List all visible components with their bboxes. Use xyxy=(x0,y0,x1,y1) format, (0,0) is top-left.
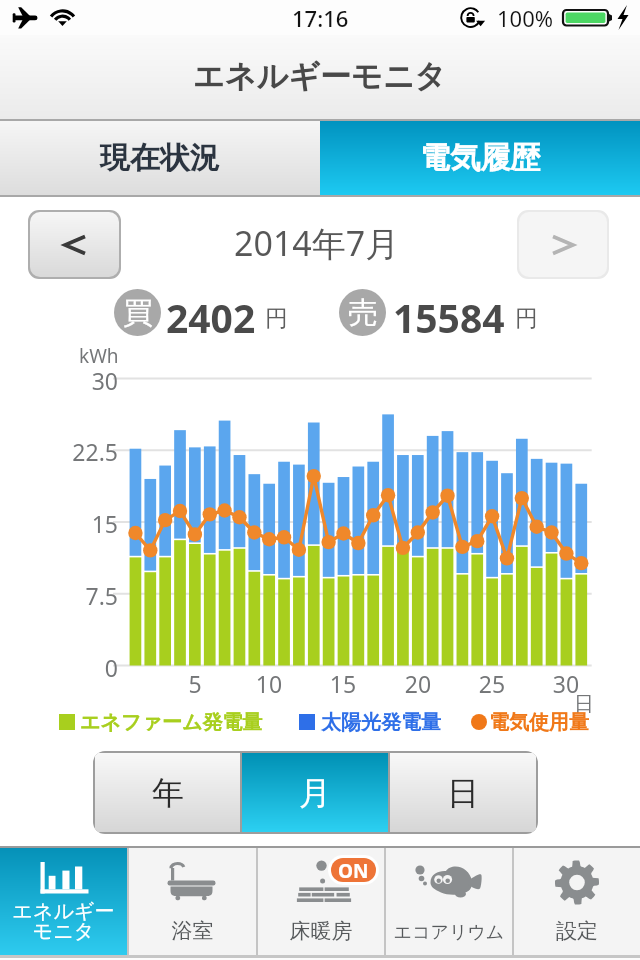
staticText: 日 xyxy=(447,773,479,813)
button[interactable]: 設定 xyxy=(514,848,640,955)
staticText: 浴室 xyxy=(129,918,256,944)
button[interactable]: 床暖房 xyxy=(258,848,384,955)
staticText: 10 xyxy=(249,668,289,699)
button[interactable]: 日 xyxy=(390,753,536,832)
button[interactable]: 年 xyxy=(95,753,240,832)
button[interactable]: 浴室 xyxy=(129,848,256,955)
staticText: 5 xyxy=(175,668,215,699)
button[interactable]: エコアリウム xyxy=(386,848,512,955)
button[interactable]: Previous month xyxy=(30,212,119,277)
staticText: 太陽光発電量 xyxy=(321,710,441,735)
staticText: 17:16 xyxy=(292,3,349,33)
staticText: 床暖房 xyxy=(258,918,384,944)
staticText: 年 xyxy=(152,773,184,813)
staticText: 20 xyxy=(398,668,438,699)
staticText: 100% xyxy=(497,3,554,33)
staticText: 月 xyxy=(299,773,331,813)
staticText: 電気使用量 xyxy=(489,710,589,735)
button[interactable]: エネルギー モニタ xyxy=(0,848,127,955)
staticText: エコアリウム xyxy=(386,921,512,944)
button[interactable]: Next month xyxy=(519,212,607,277)
staticText: 15584 xyxy=(393,291,505,344)
staticText: 15 xyxy=(323,668,363,699)
staticText: 25 xyxy=(472,668,512,699)
staticText: エネファーム発電量 xyxy=(80,710,263,735)
staticText: kWh xyxy=(79,343,119,369)
staticText: 買 xyxy=(123,294,153,332)
staticText: ON xyxy=(338,858,369,882)
staticText: エネルギーモニタ xyxy=(193,57,447,96)
staticText: 円 xyxy=(265,304,288,333)
staticText: 現在状況 xyxy=(100,139,220,177)
staticText: 0 xyxy=(48,652,118,683)
button[interactable]: 月 xyxy=(242,753,388,832)
staticText: 売 xyxy=(348,294,378,332)
staticText: 7.5 xyxy=(48,580,118,611)
staticText: 2402 xyxy=(166,291,256,344)
staticText: 円 xyxy=(515,304,538,333)
staticText: 22.5 xyxy=(48,436,118,467)
staticText: 日 xyxy=(574,692,594,717)
staticText: 電気履歴 xyxy=(420,139,540,177)
staticText: 15 xyxy=(48,508,118,539)
button[interactable]: 電気履歴 xyxy=(320,119,640,197)
staticText: 30 xyxy=(546,668,586,699)
staticText: エネルギー モニタ xyxy=(0,899,127,944)
staticText: 設定 xyxy=(514,918,640,944)
button[interactable]: 現在状況 xyxy=(0,119,320,197)
staticText: 30 xyxy=(48,365,118,396)
staticText: 2014年7月 xyxy=(234,220,400,266)
